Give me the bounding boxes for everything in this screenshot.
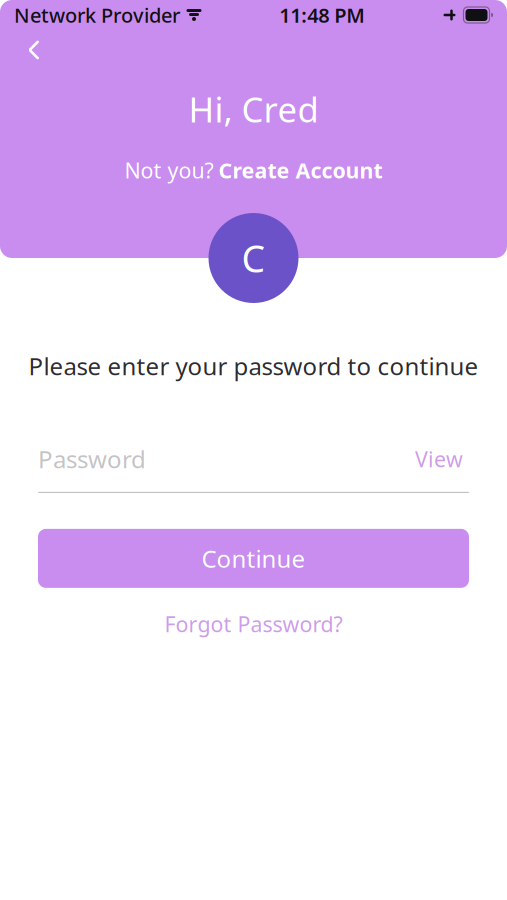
button[interactable]: Continue: [38, 529, 469, 588]
staticText: Not you?: [124, 156, 213, 184]
button[interactable]: Account avatar, C: [208, 213, 298, 303]
button[interactable]: Not you?: [116, 152, 390, 188]
button[interactable]: Back: [12, 30, 56, 70]
staticText: Network Provider: [14, 2, 180, 28]
staticText: Please enter your password to continue: [28, 350, 478, 382]
staticText: 11:48 PM: [279, 2, 365, 28]
staticText: View: [415, 445, 463, 473]
button[interactable]: View: [409, 439, 469, 479]
staticText: Forgot Password?: [164, 610, 342, 638]
staticText: Continue: [201, 542, 305, 574]
staticText: Hi, Cred: [188, 86, 318, 132]
staticText: Create Account: [218, 156, 382, 184]
staticText: Password: [38, 443, 146, 475]
staticText: C: [241, 233, 265, 283]
button[interactable]: Forgot Password?: [154, 602, 352, 646]
